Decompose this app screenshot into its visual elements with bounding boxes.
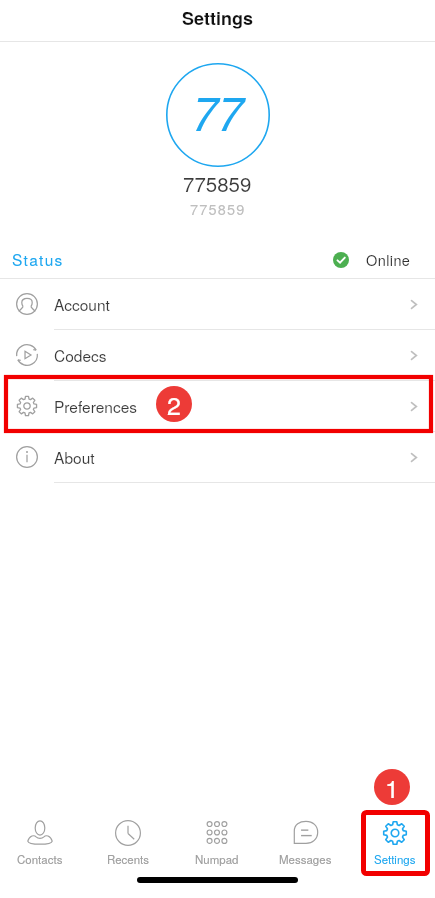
button[interactable]: Account	[0, 279, 435, 329]
staticText: 2	[167, 386, 181, 422]
staticText: Settings	[374, 851, 416, 867]
staticText: Messages	[279, 851, 332, 867]
staticText: 775859	[183, 168, 252, 197]
button[interactable]: Recents	[84, 810, 172, 875]
button[interactable]: Settings	[350, 810, 435, 875]
button[interactable]: Codecs	[0, 330, 435, 380]
button[interactable]: About	[0, 432, 435, 482]
staticText: 77	[192, 79, 244, 144]
staticText: Status	[12, 248, 64, 270]
staticText: Codecs	[54, 344, 107, 366]
staticText: Settings	[182, 5, 253, 31]
staticText: Numpad	[195, 851, 239, 867]
button[interactable]: Preferences	[0, 381, 435, 431]
staticText: Account	[54, 293, 110, 315]
staticText: Contacts	[17, 851, 63, 867]
button[interactable]: Numpad	[172, 810, 261, 875]
button[interactable]: Contacts	[0, 810, 84, 875]
staticText: Recents	[107, 851, 150, 867]
staticText: Preferences	[54, 395, 138, 417]
staticText: 775859	[190, 198, 246, 219]
staticText: Online	[366, 249, 411, 270]
staticText: About	[54, 446, 95, 468]
button[interactable]: Messages	[261, 810, 350, 875]
staticText: 1	[385, 769, 399, 805]
